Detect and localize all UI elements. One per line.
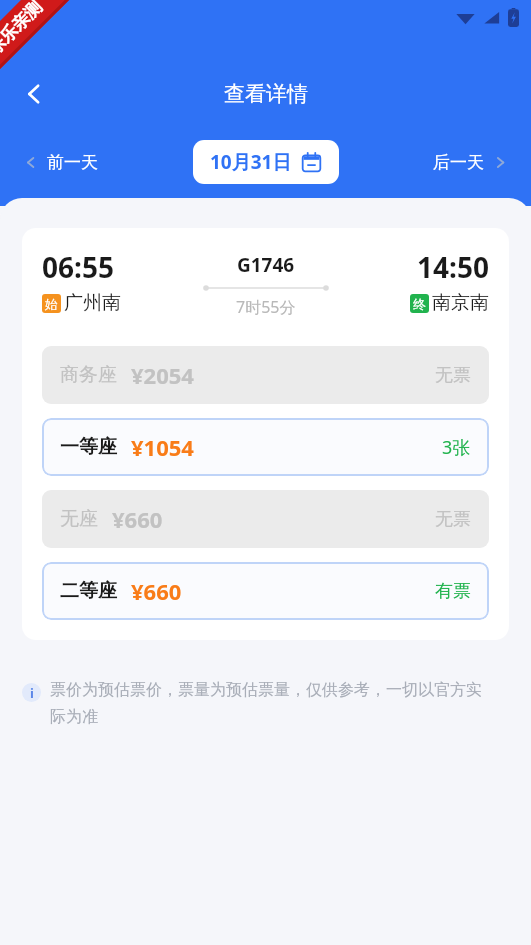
staticText: 06:55 <box>42 248 114 286</box>
staticText: 乐乐亲测 <box>0 0 46 59</box>
staticText: 一等座 <box>60 435 117 459</box>
staticText: 14:50 <box>417 248 489 286</box>
staticText: 商务座 <box>60 363 117 387</box>
button[interactable]: Back <box>10 70 58 118</box>
staticText: i <box>30 684 34 702</box>
button[interactable]: 二等座 <box>42 562 489 620</box>
staticText: 查看详情 <box>224 81 308 107</box>
staticText: 3张 <box>442 435 471 460</box>
staticText: 终 <box>413 296 426 312</box>
other: Pick date <box>301 152 322 173</box>
staticText: 有票 <box>435 580 471 603</box>
staticText: 10月31日 <box>210 149 292 175</box>
staticText: 二等座 <box>60 579 117 603</box>
staticText: 广州南 <box>64 291 121 315</box>
staticText: 票价为预估票价，票量为预估票量，仅供参考，一切以官方实际为准 <box>50 680 490 727</box>
staticText: ¥2054 <box>131 360 194 390</box>
staticText: G1746 <box>237 252 295 278</box>
button[interactable]: 后一天 <box>427 144 513 181</box>
staticText: ¥1054 <box>131 432 194 462</box>
staticText: 后一天 <box>433 152 484 173</box>
staticText: 7时55分 <box>236 296 296 318</box>
button[interactable]: 前一天 <box>18 144 104 181</box>
staticText: 始 <box>45 296 58 312</box>
button[interactable]: 10月31日 <box>193 140 339 184</box>
staticText: ¥660 <box>112 504 163 534</box>
staticText: 前一天 <box>47 152 98 173</box>
button[interactable]: 商务座 <box>42 346 489 404</box>
staticText: 无票 <box>435 364 471 387</box>
staticText: 无票 <box>435 508 471 531</box>
staticText: 无座 <box>60 507 98 531</box>
button[interactable]: 一等座 <box>42 418 489 476</box>
staticText: ¥660 <box>131 576 182 606</box>
staticText: 南京南 <box>432 291 489 315</box>
button[interactable]: 无座 <box>42 490 489 548</box>
